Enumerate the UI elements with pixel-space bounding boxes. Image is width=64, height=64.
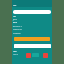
staticText: jonatha n (13, 25, 22, 28)
staticText: Not (13, 50, 17, 53)
button[interactable] (14, 44, 51, 48)
staticText: address (13, 32, 21, 35)
staticText: phone nu (13, 28, 23, 31)
button[interactable]: Record (43, 53, 48, 58)
button[interactable] (13, 10, 51, 14)
button[interactable] (14, 37, 50, 41)
staticText: Tap e (13, 53, 18, 56)
button[interactable] (12, 0, 52, 7)
staticText: Ema (13, 21, 18, 24)
button[interactable]: Delete (26, 53, 31, 58)
staticText: Na (13, 15, 16, 18)
staticText: Jona (13, 18, 18, 21)
staticText: Acc (13, 4, 17, 7)
